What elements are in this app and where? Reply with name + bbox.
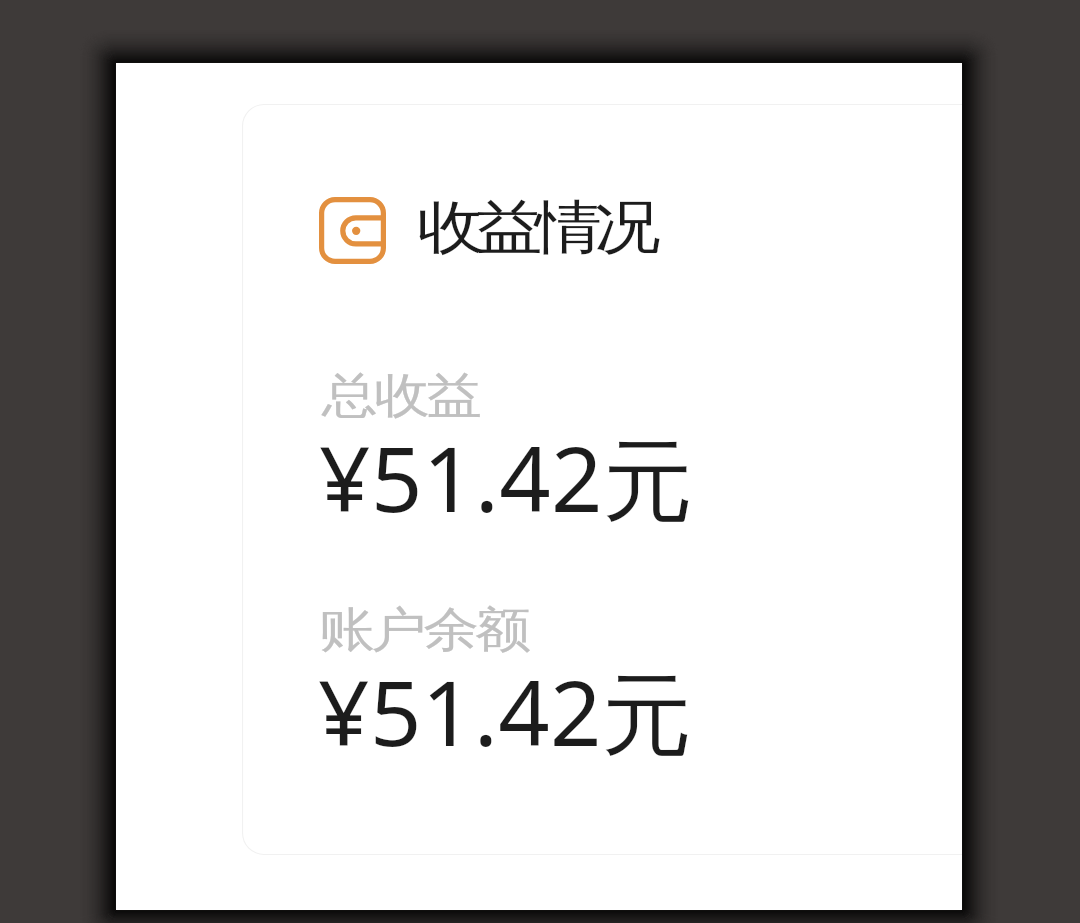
button[interactable]: Wallet bbox=[303, 184, 671, 277]
staticText: 收益情况 bbox=[417, 191, 654, 264]
staticText: 总收益 bbox=[322, 366, 479, 426]
staticText: 账户余额 bbox=[319, 600, 528, 660]
other: Wallet bbox=[319, 197, 386, 264]
button[interactable]: 总收益 bbox=[317, 366, 732, 549]
staticText: ¥51.42元 bbox=[319, 416, 694, 539]
button[interactable]: Wallet bbox=[242, 104, 962, 855]
staticText: ¥51.42元 bbox=[318, 650, 693, 773]
button[interactable]: 账户余额 bbox=[316, 600, 731, 783]
